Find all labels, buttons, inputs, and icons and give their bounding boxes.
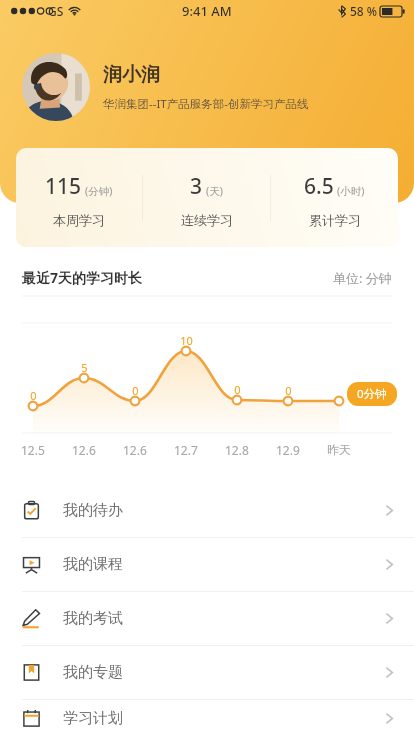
staticText: 我的待办	[63, 501, 123, 520]
staticText: 累计学习	[309, 212, 361, 228]
staticText: 12.9	[276, 442, 300, 458]
button[interactable]: 我的待办	[0, 484, 414, 537]
button[interactable]: 我的课程	[0, 538, 414, 591]
staticText: 5	[81, 360, 88, 375]
staticText: 12.5	[21, 442, 45, 458]
button[interactable]: 学习计划	[0, 700, 414, 736]
staticText: 连续学习	[181, 212, 233, 228]
button[interactable]: 115	[16, 148, 142, 247]
staticText: (分钟)	[85, 184, 113, 198]
staticText: 学习计划	[63, 709, 123, 728]
staticText: 我的课程	[63, 555, 123, 574]
staticText: 12.6	[72, 442, 96, 458]
staticText: 0	[234, 382, 241, 397]
staticText: (天)	[206, 184, 223, 198]
staticText: 0	[30, 388, 37, 403]
staticText: 12.8	[225, 442, 249, 458]
staticText: 12.6	[123, 442, 147, 458]
button[interactable]: 我的考试	[0, 592, 414, 645]
staticText: 最近7天的学习时长	[22, 268, 143, 287]
button[interactable]: 3	[143, 148, 270, 247]
staticText: 12.7	[174, 442, 198, 458]
staticText: 本周学习	[53, 212, 105, 228]
staticText: 6.5	[304, 172, 334, 201]
button[interactable]: 我的专题	[0, 646, 414, 699]
staticText: 昨天	[327, 442, 351, 457]
button[interactable]: Profile photo	[22, 53, 90, 121]
staticText: 115	[45, 172, 82, 201]
staticText: 9:41 AM	[182, 2, 232, 20]
staticText: 0分钟	[357, 386, 387, 402]
staticText: 0	[285, 383, 292, 398]
staticText: 58 %	[350, 3, 378, 19]
button[interactable]: 6.5	[271, 148, 398, 247]
staticText: GS	[48, 3, 64, 19]
staticText: 3	[190, 172, 203, 201]
staticText: 10	[180, 333, 193, 348]
staticText: 我的考试	[63, 609, 123, 628]
staticText: 0	[132, 383, 139, 398]
staticText: 单位: 分钟	[333, 269, 392, 287]
staticText: 我的专题	[63, 663, 123, 682]
button[interactable]: 0分钟	[347, 382, 397, 406]
staticText: 华润集团--IT产品服务部-创新学习产品线	[103, 96, 309, 112]
staticText: 润小润	[103, 63, 160, 87]
staticText: (小时)	[337, 184, 365, 198]
